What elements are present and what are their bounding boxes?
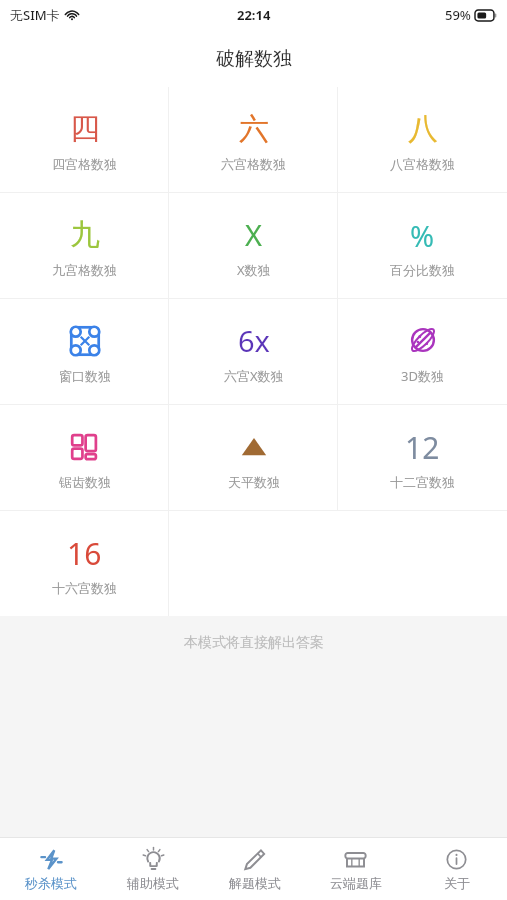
button[interactable]: 云端题库 [305, 838, 406, 900]
button[interactable]: 3D数独 [338, 299, 507, 404]
staticText: 八 [408, 110, 438, 148]
staticText: 八宫格数独 [390, 156, 455, 172]
button[interactable]: % [338, 193, 507, 298]
staticText: 十二宫数独 [390, 474, 455, 490]
staticText: 22:14 [237, 6, 271, 24]
staticText: 秒杀模式 [25, 875, 77, 891]
staticText: 窗口数独 [59, 368, 111, 384]
button[interactable]: 四 [0, 87, 169, 192]
staticText: 无SIM卡 [10, 6, 60, 24]
staticText: 四 [70, 110, 100, 148]
staticText: 6x [238, 321, 270, 360]
button[interactable]: 六 [169, 87, 338, 192]
button[interactable]: 关于 [406, 838, 507, 900]
staticText: X数独 [237, 261, 271, 279]
staticText: 破解数独 [216, 47, 292, 71]
staticText: 九 [70, 216, 100, 254]
button[interactable]: 6x [169, 299, 338, 404]
staticText: X [245, 215, 262, 254]
staticText: 59% [445, 6, 471, 24]
staticText: 云端题库 [330, 875, 382, 891]
staticText: 六宫X数独 [224, 367, 284, 385]
button[interactable]: 秒杀模式 [0, 838, 102, 900]
button[interactable]: 九 [0, 193, 169, 298]
staticText: % [410, 216, 435, 255]
button[interactable]: 锯齿数独 [0, 405, 169, 510]
staticText: 六宫格数独 [221, 156, 286, 172]
staticText: 关于 [444, 875, 470, 891]
button[interactable]: 16 [0, 511, 169, 616]
staticText: 3D数独 [401, 367, 444, 385]
staticText: 辅助模式 [127, 875, 179, 891]
staticText: 九宫格数独 [52, 262, 117, 278]
staticText: 本模式将直接解出答案 [184, 634, 324, 652]
button[interactable]: 八 [338, 87, 507, 192]
button[interactable]: 天平数独 [169, 405, 338, 510]
staticText: 四宫格数独 [52, 156, 117, 172]
button[interactable]: 辅助模式 [102, 838, 204, 900]
staticText: 解题模式 [229, 875, 281, 891]
staticText: 16 [67, 533, 102, 574]
staticText: 锯齿数独 [59, 474, 111, 490]
staticText: 十六宫数独 [52, 580, 117, 596]
button[interactable]: X [169, 193, 338, 298]
staticText: 六 [239, 110, 269, 148]
button[interactable]: 12 [338, 405, 507, 510]
staticText: 天平数独 [228, 474, 280, 490]
staticText: 百分比数独 [390, 262, 455, 278]
button[interactable]: 解题模式 [204, 838, 305, 900]
button[interactable]: 窗口数独 [0, 299, 169, 404]
staticText: 12 [405, 427, 440, 468]
